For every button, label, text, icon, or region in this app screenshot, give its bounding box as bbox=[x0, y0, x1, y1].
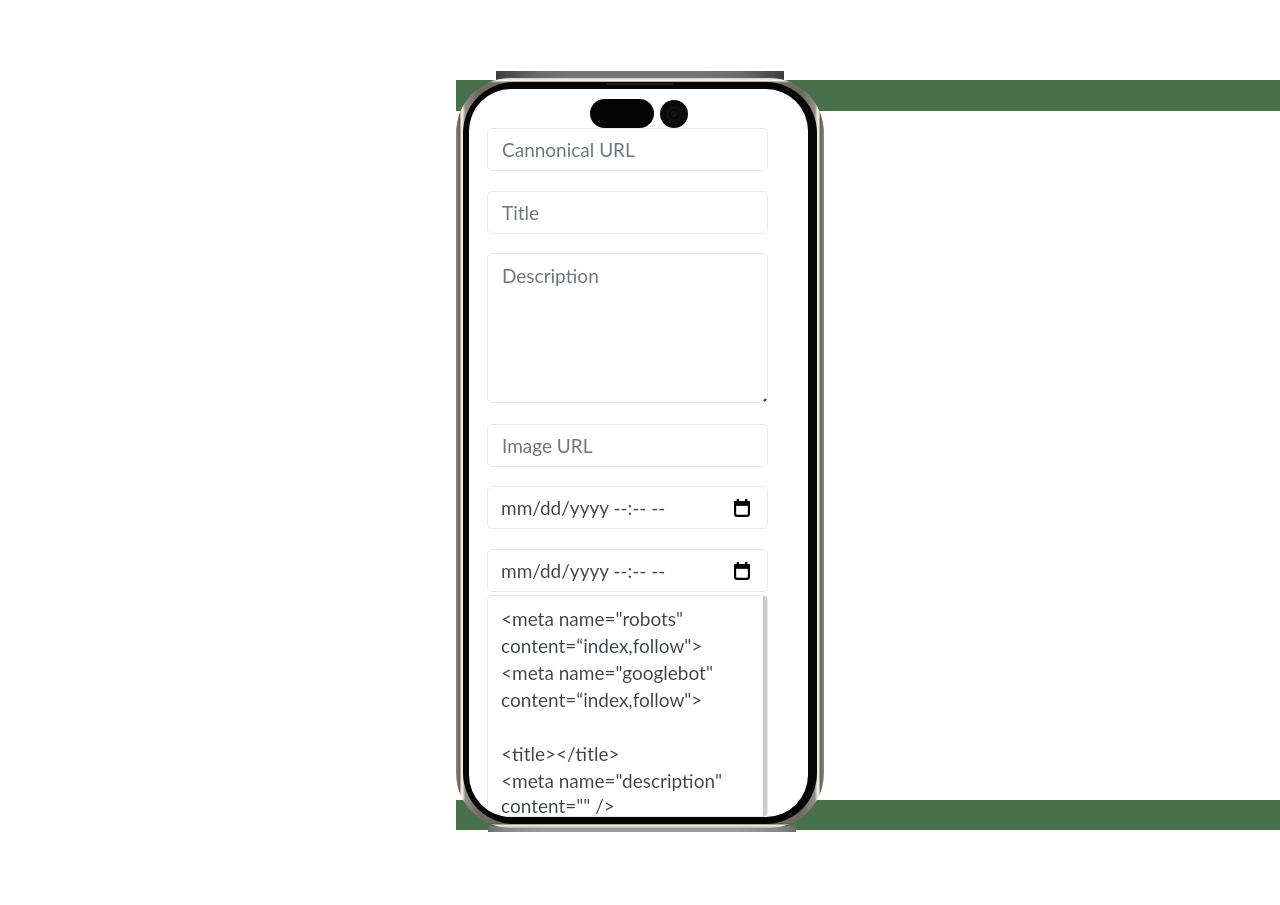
other: Open date picker bbox=[734, 562, 750, 580]
staticText: content="" /> bbox=[501, 794, 615, 817]
staticText: Cannonical URL bbox=[502, 138, 635, 161]
staticText: <title></title> bbox=[501, 742, 620, 765]
button[interactable]: Cannonical URL bbox=[487, 128, 768, 171]
staticText: <meta name="description" bbox=[501, 769, 722, 792]
button[interactable]: <meta name="robots" bbox=[487, 595, 768, 817]
button[interactable]: Description bbox=[487, 253, 768, 403]
staticText: mm/dd/yyyy --:-- -- bbox=[501, 559, 666, 582]
other: Open date picker bbox=[734, 499, 750, 517]
staticText: Image URL bbox=[502, 434, 593, 457]
button[interactable]: Image URL bbox=[487, 424, 768, 467]
staticText: content=“index,follow"> bbox=[501, 688, 703, 711]
button[interactable]: Title bbox=[487, 191, 768, 234]
staticText: Description bbox=[502, 264, 599, 287]
staticText: Title bbox=[502, 201, 540, 224]
staticText: <meta name="robots" bbox=[501, 607, 684, 630]
staticText: <meta name="googlebot" bbox=[501, 661, 713, 684]
button[interactable]: mm/dd/yyyy --:-- -- bbox=[487, 549, 768, 592]
staticText: content=“index,follow"> bbox=[501, 634, 703, 657]
staticText: mm/dd/yyyy --:-- -- bbox=[501, 496, 666, 519]
button[interactable]: mm/dd/yyyy --:-- -- bbox=[487, 486, 768, 529]
